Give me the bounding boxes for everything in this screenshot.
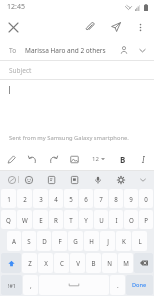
button[interactable]: 5	[64, 189, 78, 208]
button[interactable]: U	[94, 210, 108, 229]
staticText: K	[122, 237, 126, 245]
button[interactable]: Emoji	[22, 173, 35, 186]
button[interactable]: O	[124, 210, 138, 229]
button[interactable]: I	[133, 148, 154, 170]
button[interactable]: Add contact	[115, 41, 133, 59]
button[interactable]: E	[33, 210, 48, 229]
staticText: B	[91, 259, 96, 267]
staticText: Marissa Haro and 2 others	[25, 46, 106, 55]
button[interactable]: 6	[79, 189, 93, 208]
button[interactable]: ,	[23, 275, 38, 295]
staticText: 7	[99, 195, 103, 203]
button[interactable]: 9	[124, 189, 138, 208]
button[interactable]: B	[112, 148, 133, 170]
button[interactable]: More options	[129, 16, 151, 38]
button[interactable]: Voice input	[91, 173, 104, 186]
button[interactable]: Stickers	[45, 173, 58, 186]
button[interactable]: Close	[0, 14, 26, 40]
button[interactable]: S	[22, 231, 36, 251]
button[interactable]: K	[116, 231, 131, 251]
staticText: F	[58, 237, 62, 245]
button[interactable]: 3	[33, 189, 48, 208]
staticText: ,	[30, 281, 32, 289]
staticText: 0	[144, 195, 148, 203]
staticText: 4	[54, 195, 58, 203]
button[interactable]: 2	[17, 189, 32, 208]
button[interactable]: Y	[79, 210, 93, 229]
button[interactable]: Done	[126, 275, 153, 295]
button[interactable]: H	[84, 231, 99, 251]
button[interactable]: GIF	[68, 173, 81, 186]
staticText: Subject	[9, 66, 32, 75]
button[interactable]: R	[49, 210, 63, 229]
staticText: C	[60, 259, 64, 267]
staticText: 12	[92, 155, 99, 163]
button[interactable]: 12	[85, 148, 112, 170]
staticText: X	[44, 259, 48, 267]
button[interactable]: V	[70, 253, 85, 273]
button[interactable]: Space	[39, 275, 109, 295]
staticText: To	[9, 46, 17, 55]
staticText: Done	[132, 281, 147, 289]
button[interactable]: I	[109, 210, 123, 229]
staticText: 2	[23, 195, 27, 203]
button[interactable]: 0	[139, 189, 153, 208]
staticText: V	[76, 259, 80, 267]
button[interactable]: 8	[109, 189, 123, 208]
staticText: 5	[69, 195, 73, 203]
button[interactable]: 4	[49, 189, 63, 208]
staticText: U	[99, 216, 104, 224]
button[interactable]: Q	[1, 210, 16, 229]
staticText: P	[144, 216, 148, 224]
button[interactable]: Hide keyboard	[137, 174, 149, 186]
button[interactable]: M	[118, 253, 133, 273]
button[interactable]: Expand recipients	[133, 41, 151, 59]
button[interactable]: L	[132, 231, 147, 251]
button[interactable]: X	[38, 253, 53, 273]
staticText: Z	[28, 259, 32, 267]
button[interactable]: Attach	[77, 14, 103, 40]
button[interactable]: G	[68, 231, 83, 251]
button[interactable]: A	[7, 231, 21, 251]
button[interactable]: Undo	[22, 148, 43, 170]
button[interactable]: Text style	[0, 148, 22, 170]
staticText: Q	[6, 216, 11, 224]
staticText: 6	[84, 195, 88, 203]
button[interactable]: 1	[1, 189, 16, 208]
button[interactable]: T	[64, 210, 78, 229]
button[interactable]: To	[0, 40, 154, 60]
staticText: 3	[39, 195, 43, 203]
staticText: E	[39, 216, 43, 224]
staticText: L	[138, 237, 142, 245]
button[interactable]: Backspace	[134, 253, 153, 273]
button[interactable]: N	[102, 253, 117, 273]
staticText: H	[89, 237, 94, 245]
button[interactable]: Z	[22, 253, 37, 273]
button[interactable]: W	[17, 210, 32, 229]
button[interactable]: Insert image	[64, 148, 85, 170]
button[interactable]: Send	[103, 14, 129, 40]
button[interactable]: Shift	[1, 253, 21, 273]
staticText: I	[115, 216, 118, 224]
button[interactable]: Sent from my Samsung Galaxy smartphone.	[0, 80, 154, 148]
button[interactable]: Predictive text	[5, 173, 18, 186]
staticText: R	[54, 216, 58, 224]
button[interactable]: Subject	[0, 61, 154, 79]
staticText: Sent from my Samsung Galaxy smartphone.	[9, 134, 129, 142]
button[interactable]: 7	[94, 189, 108, 208]
button[interactable]: Settings	[114, 173, 127, 186]
staticText: 9	[129, 195, 133, 203]
button[interactable]: P	[139, 210, 153, 229]
button[interactable]: .	[110, 275, 125, 295]
button[interactable]: C	[54, 253, 69, 273]
button[interactable]: D	[37, 231, 51, 251]
button[interactable]: B	[86, 253, 101, 273]
button[interactable]: Redo	[43, 148, 64, 170]
button[interactable]: !#1	[1, 275, 22, 295]
staticText: 1	[7, 195, 11, 203]
staticText: B	[120, 154, 126, 165]
staticText: N	[107, 259, 112, 267]
button[interactable]: F	[52, 231, 67, 251]
button[interactable]: J	[100, 231, 115, 251]
staticText: J	[107, 237, 109, 245]
